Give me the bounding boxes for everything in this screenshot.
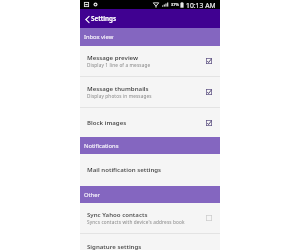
button[interactable]: Back (84, 16, 91, 23)
button[interactable]: Back (80, 9, 220, 28)
button[interactable]: Other (80, 186, 220, 203)
button[interactable]: Sync Yahoo contacts (80, 203, 220, 233)
button[interactable]: Mail notification settings (80, 154, 220, 186)
button[interactable]: Message thumbnails (80, 77, 220, 107)
button[interactable]: Enabled (204, 87, 214, 97)
button[interactable]: Block images (80, 108, 220, 137)
staticText: Message preview (87, 53, 139, 61)
staticText: 37% (171, 2, 179, 7)
staticText: Display 1 line of a message (87, 62, 151, 68)
staticText: Display photos in messages (87, 93, 152, 99)
staticText: Block images (87, 118, 127, 126)
staticText: Other (84, 191, 100, 199)
staticText: Sync Yahoo contacts (87, 210, 148, 218)
button[interactable]: Enabled (204, 56, 214, 66)
button[interactable]: Inbox view (80, 28, 220, 46)
staticText: Syncs contacts with device's address boo… (87, 219, 185, 225)
staticText: Signature settings (87, 242, 142, 250)
staticText: 10:13 AM (186, 1, 216, 10)
button[interactable]: Disabled (204, 213, 214, 223)
button[interactable]: Notifications (80, 137, 220, 154)
staticText: Notifications (84, 142, 119, 150)
staticText: Mail notification settings (87, 165, 162, 173)
staticText: Settings (91, 14, 117, 23)
button[interactable]: Enabled (204, 118, 214, 128)
button[interactable]: Signature settings (80, 234, 220, 250)
button[interactable]: Message preview (80, 46, 220, 76)
staticText: Inbox view (84, 33, 114, 41)
staticText: Message thumbnails (87, 84, 149, 92)
